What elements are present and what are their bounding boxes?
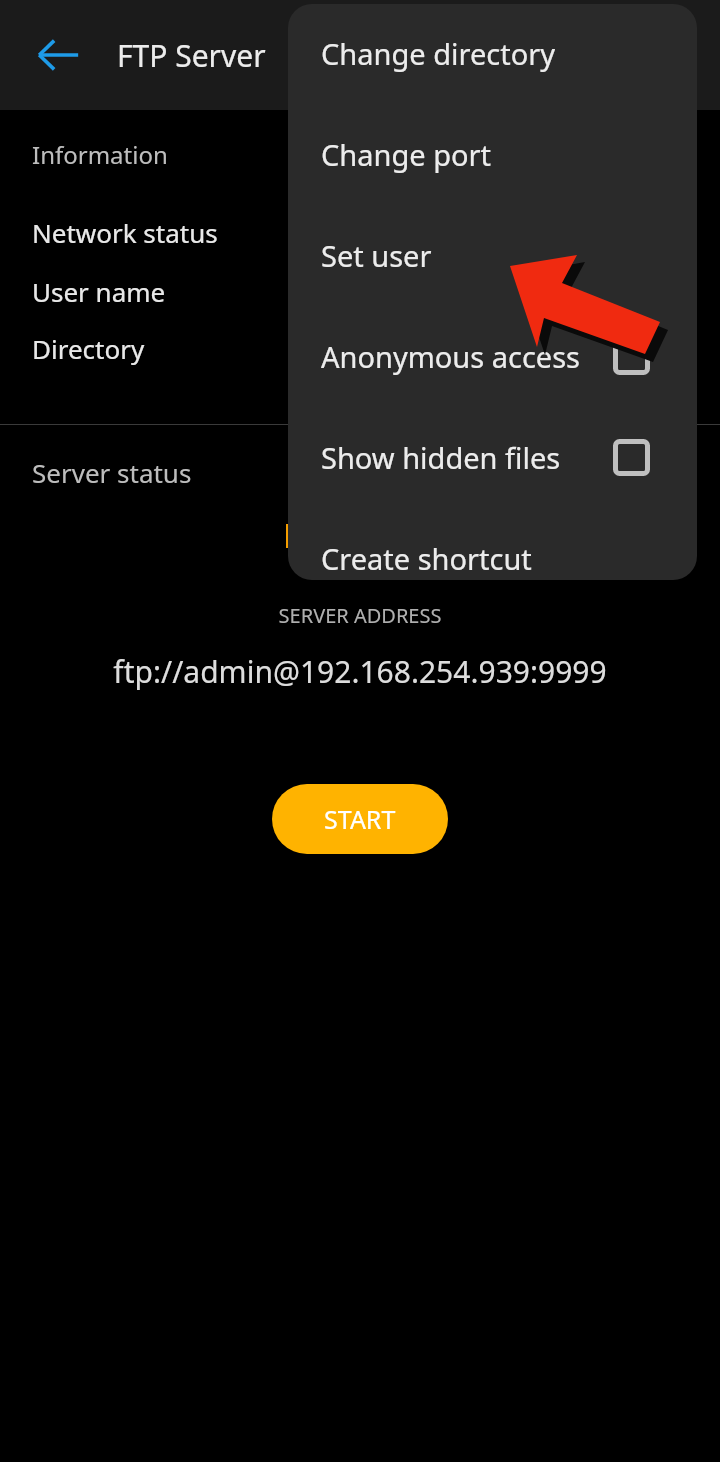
staticText: Network status bbox=[32, 215, 218, 250]
staticText: Anonymous access bbox=[321, 337, 580, 376]
button[interactable]: Back bbox=[30, 27, 86, 83]
button[interactable]: Anonymous access bbox=[288, 275, 697, 376]
staticText: Server status bbox=[32, 455, 192, 490]
staticText: SERVER ADDRESS bbox=[0, 602, 720, 629]
staticText: Create shortcut bbox=[321, 539, 532, 578]
staticText: Change port bbox=[321, 135, 491, 174]
button[interactable]: Change port bbox=[288, 73, 697, 174]
staticText: Set user bbox=[321, 236, 432, 275]
staticText: Directory bbox=[32, 331, 145, 366]
staticText: FTP Server bbox=[117, 35, 266, 76]
button[interactable]: START bbox=[272, 784, 448, 854]
staticText: Information bbox=[32, 138, 168, 171]
button[interactable]: Create shortcut bbox=[288, 477, 697, 578]
button[interactable]: Change directory bbox=[288, 4, 697, 73]
staticText: START bbox=[324, 802, 396, 836]
button[interactable]: Set user bbox=[288, 174, 697, 275]
button[interactable]: Show hidden files bbox=[288, 376, 697, 477]
staticText: Change directory bbox=[321, 34, 555, 73]
staticText: User name bbox=[32, 274, 166, 309]
staticText: Show hidden files bbox=[321, 438, 561, 477]
staticText: ftp://admin@192.168.254.939:9999 bbox=[0, 651, 720, 692]
